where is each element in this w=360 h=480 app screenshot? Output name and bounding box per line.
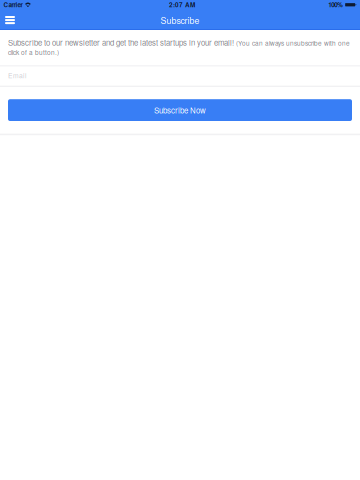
staticText: 2:07 AM xyxy=(169,0,195,9)
staticText: Email xyxy=(8,70,27,80)
staticText: Subscribe to our newsletter and get the … xyxy=(8,37,350,57)
staticText: Subscribe xyxy=(160,14,199,26)
staticText: Subscribe Now xyxy=(154,104,206,116)
staticText: Carrier xyxy=(4,0,23,9)
staticText: 100% xyxy=(328,0,343,9)
button[interactable]: Subscribe Now xyxy=(8,99,352,121)
button[interactable]: Menu xyxy=(0,9,20,29)
